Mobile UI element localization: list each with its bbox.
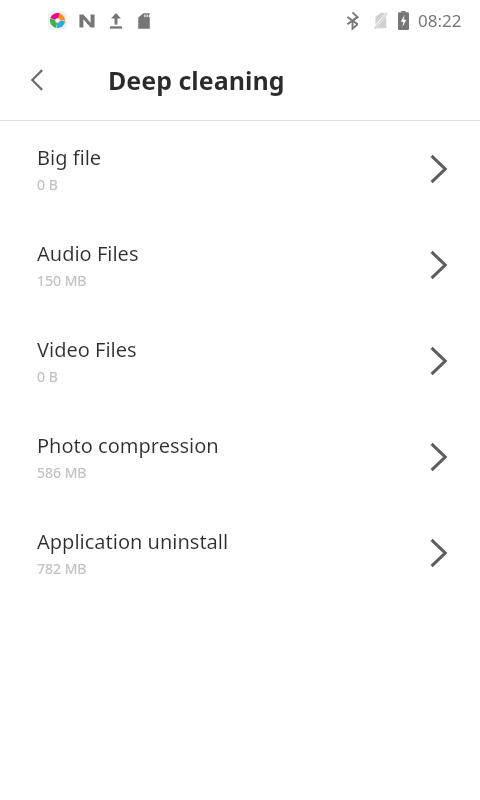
button[interactable]: Audio Files <box>0 234 480 296</box>
staticText: 150 MB <box>37 271 87 290</box>
button[interactable]: Big file <box>0 138 480 200</box>
staticText: 0 B <box>37 175 58 194</box>
other: No SIM card <box>372 12 389 29</box>
other: Battery charging <box>398 11 409 30</box>
staticText: 586 MB <box>37 463 87 482</box>
staticText: Deep cleaning <box>108 63 285 97</box>
staticText: Big file <box>37 144 102 171</box>
other: Bluetooth <box>344 12 361 29</box>
button[interactable]: Application uninstall <box>0 522 480 584</box>
other: SD card <box>136 13 152 29</box>
button[interactable]: Photo compression <box>0 426 480 488</box>
staticText: Audio Files <box>37 240 139 267</box>
other: Upload <box>107 12 125 30</box>
staticText: Photo compression <box>37 432 219 459</box>
staticText: Application uninstall <box>37 528 229 555</box>
other: App notification <box>48 11 67 30</box>
staticText: 782 MB <box>37 559 87 578</box>
button[interactable]: Back <box>14 56 62 104</box>
staticText: Video Files <box>37 336 137 363</box>
staticText: 08:22 <box>418 9 462 32</box>
other: Notification <box>78 12 96 30</box>
staticText: 0 B <box>37 367 58 386</box>
button[interactable]: Video Files <box>0 330 480 392</box>
